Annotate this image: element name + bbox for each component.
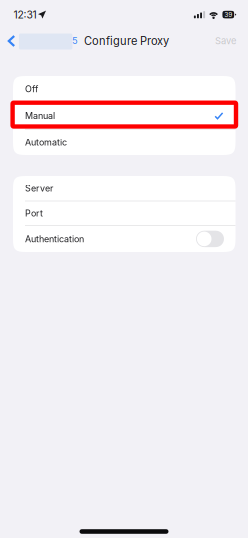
- staticText: 39: [224, 11, 232, 19]
- staticText: Server: [25, 183, 53, 194]
- button[interactable]: Off: [13, 76, 235, 102]
- staticText: Off: [25, 84, 38, 94]
- button[interactable]: Automatic: [13, 130, 235, 155]
- staticText: Save: [215, 35, 236, 46]
- button[interactable]: Back: [0, 28, 80, 54]
- staticText: 12:31: [13, 8, 36, 21]
- staticText: Manual: [25, 110, 55, 121]
- button[interactable]: Authentication: [13, 226, 235, 252]
- button[interactable]: Port: [13, 201, 235, 225]
- staticText: Authentication: [25, 233, 84, 244]
- button[interactable]: Save: [198, 28, 236, 54]
- staticText: Configure Proxy: [84, 34, 169, 48]
- staticText: Port: [25, 208, 43, 219]
- button[interactable]: Manual: [13, 103, 235, 129]
- staticText: Automatic: [25, 137, 67, 148]
- button[interactable]: Server: [13, 176, 235, 201]
- staticText: 5: [72, 35, 78, 46]
